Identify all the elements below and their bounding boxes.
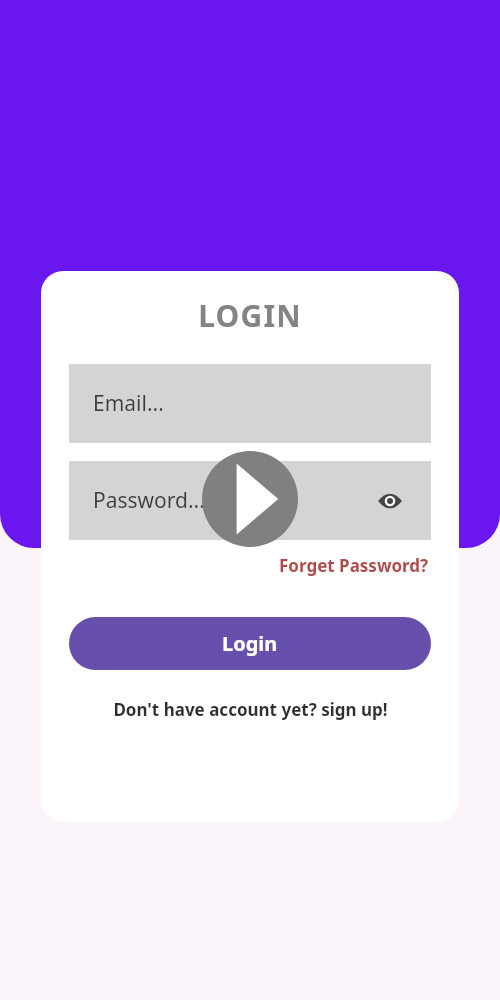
button[interactable]: Show password	[373, 484, 407, 518]
button[interactable]: Forget Password?	[277, 552, 431, 579]
button[interactable]: Login	[69, 617, 431, 670]
button[interactable]: Email...	[69, 364, 431, 443]
button[interactable]: Don't have account yet? sign up!	[109, 696, 392, 723]
staticText: Password...	[93, 486, 205, 515]
staticText: Don't have account yet? sign up!	[113, 698, 388, 721]
staticText: Email...	[93, 389, 164, 418]
staticText: LOGIN	[198, 295, 302, 336]
button[interactable]: Play	[202, 451, 298, 547]
button[interactable]: Password...	[69, 461, 431, 540]
staticText: Login	[222, 630, 278, 657]
staticText: Forget Password?	[279, 554, 429, 577]
